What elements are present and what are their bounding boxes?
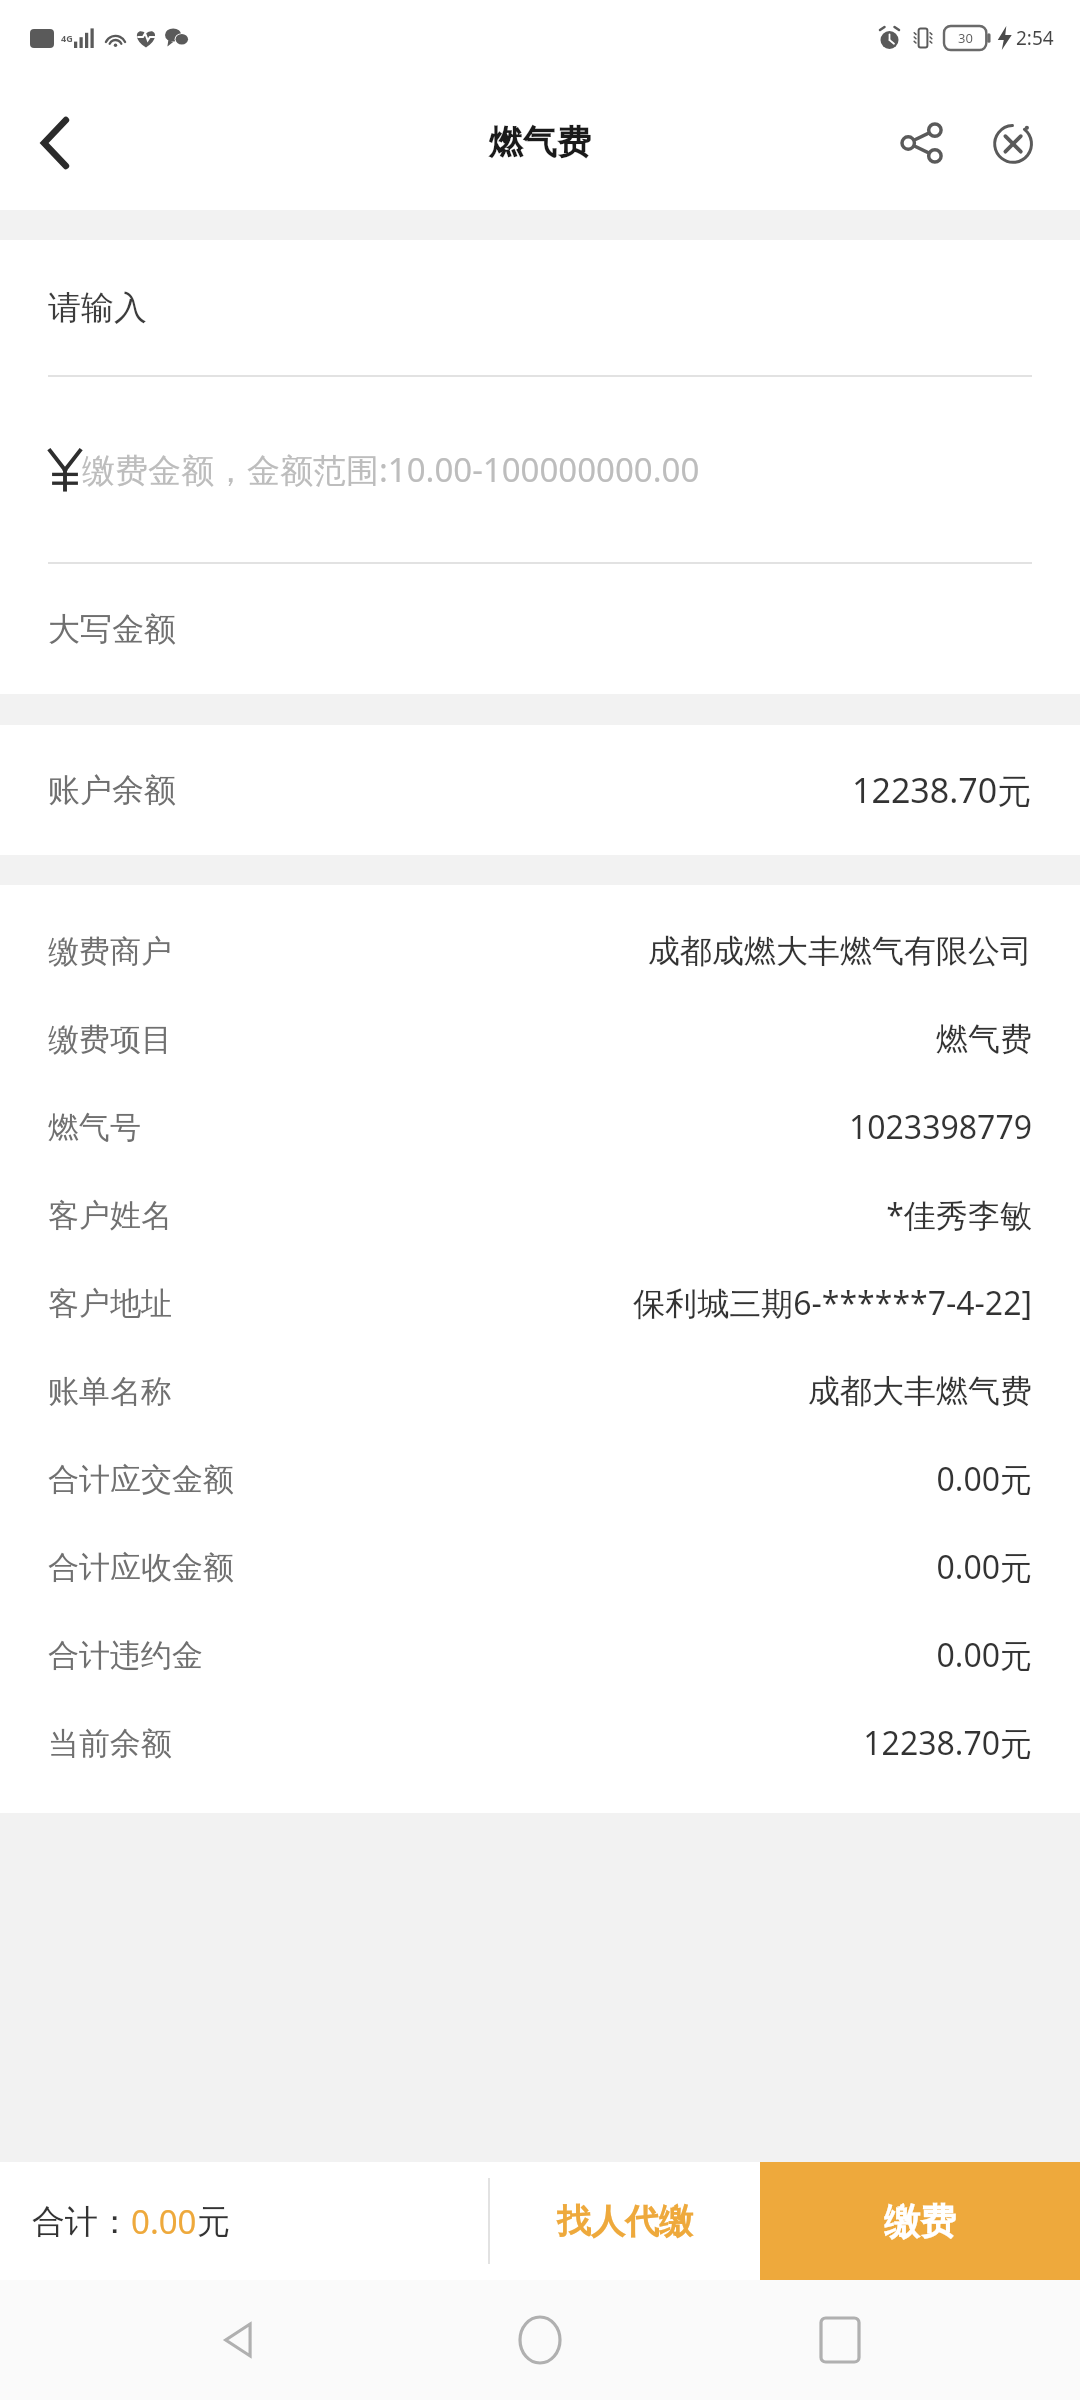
staticText: 合计：: [32, 2201, 131, 2243]
staticText: 燃气费: [936, 1019, 1032, 1059]
staticText: 0.00元: [936, 1457, 1032, 1501]
staticText: 成都大丰燃气费: [808, 1371, 1032, 1411]
staticText: 当前余额: [48, 1724, 172, 1763]
staticText: 大写金额: [48, 609, 176, 649]
staticText: 2:54: [1016, 25, 1054, 51]
staticText: 0.00元: [936, 1545, 1032, 1589]
button[interactable]: Close: [968, 97, 1060, 189]
button[interactable]: 账户余额: [48, 725, 1032, 855]
button[interactable]: Back: [180, 2280, 300, 2400]
staticText: 合计应收金额: [48, 1548, 234, 1587]
staticText: 缴费商户: [48, 932, 172, 971]
button[interactable]: 客户地址: [48, 1259, 1032, 1347]
button[interactable]: 合计应交金额: [48, 1435, 1032, 1523]
staticText: 成都成燃大丰燃气有限公司: [648, 931, 1032, 971]
staticText: 合计违约金: [48, 1636, 203, 1675]
staticText: 燃气费: [489, 121, 591, 164]
button[interactable]: 合计违约金: [48, 1611, 1032, 1699]
button[interactable]: 缴费: [760, 2162, 1080, 2280]
staticText: 1023398779: [848, 1105, 1032, 1149]
button[interactable]: Share: [876, 97, 968, 189]
staticText: 缴费项目: [48, 1020, 172, 1059]
button[interactable]: 合计应收金额: [48, 1523, 1032, 1611]
button[interactable]: 合计：: [0, 2162, 488, 2280]
button[interactable]: 缴费商户: [48, 907, 1032, 995]
staticText: 30: [958, 29, 973, 47]
staticText: 账单名称: [48, 1372, 172, 1411]
staticText: 客户姓名: [48, 1196, 172, 1235]
button[interactable]: 缴费金额，金额范围:10.00-100000000.00: [48, 377, 1050, 562]
button[interactable]: 请输入: [0, 240, 1080, 375]
button[interactable]: 当前余额: [48, 1699, 1032, 1787]
button[interactable]: Home: [480, 2280, 600, 2400]
button[interactable]: Recents: [780, 2280, 900, 2400]
staticText: 客户地址: [48, 1284, 172, 1323]
staticText: 请输入: [48, 287, 147, 329]
button[interactable]: 客户姓名: [48, 1171, 1032, 1259]
staticText: 缴费金额，金额范围:10.00-100000000.00: [82, 447, 700, 492]
button[interactable]: 燃气号: [48, 1083, 1032, 1171]
staticText: 合计应交金额: [48, 1460, 234, 1499]
staticText: 4G: [61, 32, 73, 44]
staticText: 缴费: [884, 2199, 956, 2244]
staticText: 12238.70元: [852, 767, 1032, 813]
staticText: 12238.70元: [863, 1721, 1032, 1765]
staticText: 0.00元: [936, 1633, 1032, 1677]
staticText: 燃气号: [48, 1108, 141, 1147]
button[interactable]: 账单名称: [48, 1347, 1032, 1435]
staticText: 元: [197, 2201, 230, 2243]
button[interactable]: Back: [0, 88, 110, 198]
button[interactable]: 大写金额: [0, 564, 1080, 694]
staticText: 账户余额: [48, 770, 176, 810]
staticText: 保利城三期6-******7-4-22]: [633, 1281, 1032, 1325]
staticText: *佳秀李敏: [886, 1193, 1032, 1237]
button[interactable]: 缴费项目: [48, 995, 1032, 1083]
button[interactable]: 找人代缴: [490, 2162, 760, 2280]
staticText: 找人代缴: [557, 2200, 693, 2243]
staticText: 0.00: [131, 2199, 197, 2244]
